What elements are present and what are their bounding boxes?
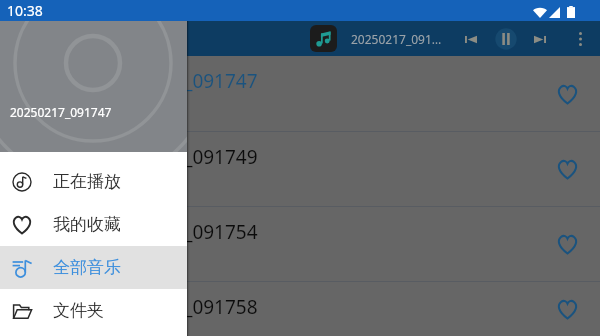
button[interactable]: Album art [310,25,337,52]
staticText: 20250217_091747 [97,68,258,94]
button[interactable]: Favourite [548,290,586,328]
button[interactable]: Favourite [548,150,586,188]
staticText: 20250217_091749 [97,144,258,170]
staticText: 10:38 [7,1,43,20]
staticText: 20250217_091758 [97,294,258,320]
staticText: 全部音乐 [53,257,121,278]
button[interactable]: 20250217_091749 [0,132,600,206]
button[interactable]: Previous [455,23,487,55]
button[interactable]: 我的收藏 [0,203,187,246]
button[interactable]: 文件夹 [0,289,187,332]
staticText: 20250217_091747 [10,104,112,120]
staticText: 我的收藏 [53,214,121,235]
staticText: 20250217_091… [351,31,442,47]
button[interactable]: Pause [490,23,522,55]
button[interactable]: 20250217_091758 [0,282,600,336]
button[interactable]: Favourite [548,75,586,113]
button[interactable]: More options [565,24,595,54]
button[interactable]: Next [524,23,556,55]
button[interactable]: 20250217_091754 [0,207,600,281]
button[interactable]: 全部音乐 [0,246,187,289]
button[interactable]: 20250217_091747 [0,56,600,131]
staticText: 文件夹 [53,300,104,321]
button[interactable]: 正在播放 [0,160,187,203]
button[interactable]: Favourite [548,225,586,263]
staticText: 20250217_091754 [97,219,258,245]
staticText: 正在播放 [53,171,121,192]
